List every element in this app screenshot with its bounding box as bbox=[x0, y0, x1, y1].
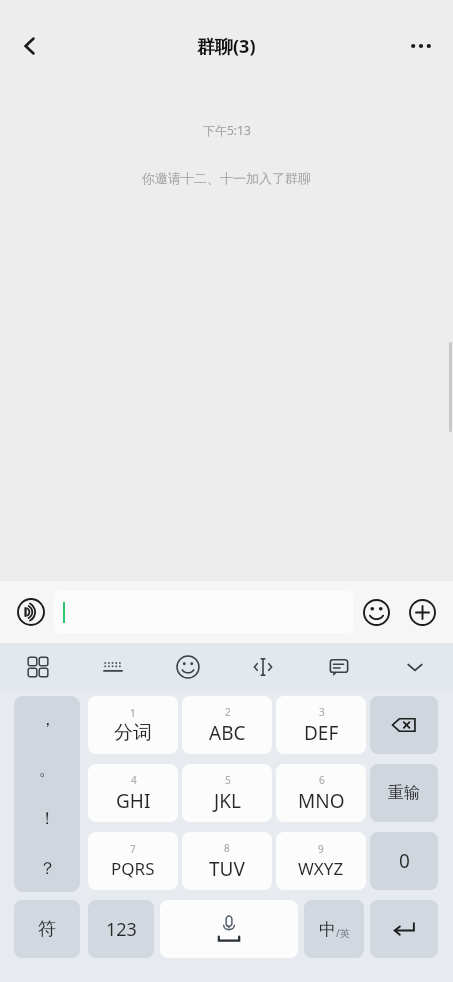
button[interactable]: Emoji bbox=[353, 589, 399, 635]
button[interactable]: 2 bbox=[182, 696, 272, 754]
button[interactable]: Apps bbox=[0, 643, 75, 691]
staticText: 。 bbox=[39, 759, 56, 780]
button[interactable]: 0 bbox=[370, 832, 438, 890]
button[interactable]: 8 bbox=[182, 832, 272, 890]
button[interactable]: Space, voice input bbox=[160, 900, 298, 958]
staticText: 重输 bbox=[388, 783, 420, 803]
staticText: TUV bbox=[209, 856, 245, 882]
staticText: 分词 bbox=[114, 721, 152, 745]
staticText: 你邀请十二、十一加入了群聊 bbox=[142, 170, 311, 186]
staticText: ， bbox=[39, 709, 56, 730]
button[interactable]: 中 bbox=[304, 900, 364, 958]
button[interactable]: 5 bbox=[182, 764, 272, 822]
staticText: DEF bbox=[304, 720, 339, 746]
staticText: 下午5:13 bbox=[203, 122, 251, 138]
staticText: ！ bbox=[39, 808, 56, 829]
button[interactable]: 123 bbox=[88, 900, 154, 958]
staticText: MNO bbox=[298, 788, 345, 814]
button[interactable]: Edit text bbox=[225, 643, 301, 691]
staticText: 8 bbox=[224, 841, 230, 855]
button[interactable]: 重输 bbox=[370, 764, 438, 822]
button[interactable]: Stickers bbox=[150, 643, 225, 691]
staticText: GHI bbox=[116, 788, 151, 814]
staticText: 群聊(3) bbox=[197, 34, 256, 59]
button[interactable]: 7 bbox=[88, 832, 178, 890]
staticText: 4 bbox=[131, 773, 137, 787]
button[interactable]: 9 bbox=[276, 832, 366, 890]
button[interactable]: 6 bbox=[276, 764, 366, 822]
staticText: 6 bbox=[319, 773, 325, 787]
button[interactable]: More options bbox=[395, 20, 447, 72]
staticText: ？ bbox=[39, 858, 56, 879]
staticText: 5 bbox=[225, 773, 231, 787]
button[interactable]: Feedback bbox=[301, 643, 377, 691]
button[interactable]: Enter bbox=[370, 900, 438, 958]
button[interactable]: ， bbox=[14, 696, 80, 892]
button[interactable]: Back bbox=[4, 20, 56, 72]
staticText: PQRS bbox=[111, 857, 155, 880]
staticText: 123 bbox=[106, 917, 137, 942]
staticText: 9 bbox=[318, 842, 324, 856]
button[interactable]: Keyboard layout bbox=[75, 643, 150, 691]
button[interactable]: 4 bbox=[88, 764, 178, 822]
staticText: JKL bbox=[214, 788, 241, 814]
staticText: 中 bbox=[319, 919, 336, 940]
button[interactable]: 符 bbox=[14, 900, 80, 958]
button[interactable]: Backspace bbox=[370, 696, 438, 754]
staticText: 1 bbox=[130, 706, 136, 720]
button[interactable]: More bbox=[399, 589, 445, 635]
button[interactable] bbox=[54, 591, 353, 633]
button[interactable]: Voice input bbox=[8, 589, 54, 635]
button[interactable]: Hide keyboard bbox=[377, 643, 453, 691]
staticText: WXYZ bbox=[298, 857, 344, 880]
button[interactable]: 1 bbox=[88, 696, 178, 754]
staticText: 3 bbox=[319, 705, 325, 719]
staticText: 7 bbox=[130, 842, 136, 856]
staticText: 2 bbox=[225, 705, 231, 719]
button[interactable]: 3 bbox=[276, 696, 366, 754]
staticText: ABC bbox=[209, 720, 246, 746]
staticText: 符 bbox=[38, 918, 56, 941]
staticText: /英 bbox=[336, 926, 350, 940]
staticText: 0 bbox=[399, 848, 410, 874]
